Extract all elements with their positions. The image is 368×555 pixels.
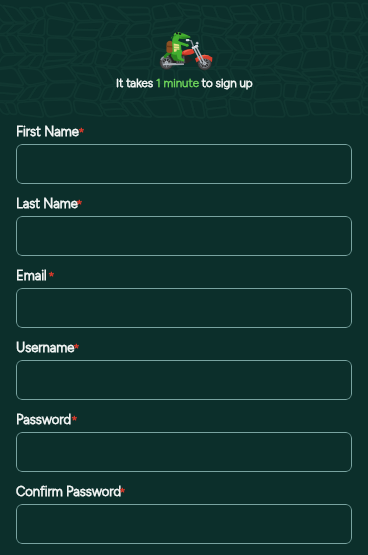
- staticText: *: [76, 197, 83, 213]
- staticText: *: [73, 341, 80, 357]
- button[interactable]: [16, 288, 352, 328]
- staticText: First Name: [16, 124, 79, 140]
- button[interactable]: [16, 144, 352, 184]
- staticText: *: [119, 485, 126, 501]
- staticText: Username: [16, 340, 75, 356]
- staticText: *: [48, 269, 55, 285]
- staticText: Password: [16, 412, 71, 428]
- button[interactable]: [16, 360, 352, 400]
- button[interactable]: [16, 504, 352, 544]
- staticText: Email: [16, 268, 47, 284]
- staticText: Last Name: [16, 196, 78, 212]
- staticText: *: [71, 413, 78, 429]
- staticText: Confirm Password: [16, 484, 122, 500]
- button[interactable]: [16, 432, 352, 472]
- button[interactable]: [16, 216, 352, 256]
- staticText: It takes 1 minute to sign up: [116, 76, 253, 90]
- staticText: *: [78, 125, 85, 141]
